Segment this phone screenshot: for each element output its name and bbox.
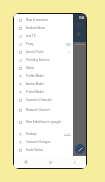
staticText: Friend Maker bbox=[26, 90, 44, 94]
staticText: Trending Stickers bbox=[26, 58, 50, 62]
button[interactable]: Robot bbox=[14, 64, 73, 72]
button[interactable]: Favorites Channels bbox=[14, 96, 73, 104]
button[interactable]: Network Channel bbox=[14, 106, 73, 114]
button[interactable]: Proxy bbox=[14, 40, 73, 48]
button[interactable]: Hotkeys bbox=[14, 130, 73, 138]
staticText: Invite Status bbox=[26, 148, 43, 152]
staticText: Avatar Maker bbox=[26, 82, 45, 86]
button[interactable]: Home bbox=[38, 156, 62, 168]
staticText: Profile Maker bbox=[26, 74, 45, 78]
button[interactable]: Friend Maker bbox=[14, 88, 73, 96]
staticText: New Screenshot bbox=[26, 18, 48, 22]
button[interactable]: Live TV bbox=[14, 32, 73, 40]
staticText: 7:45 bbox=[79, 16, 85, 20]
staticText: Live TV bbox=[26, 34, 36, 38]
button[interactable]: Android Ideas bbox=[14, 24, 73, 32]
button[interactable]: Recents bbox=[14, 156, 38, 168]
button[interactable]: Invite Status bbox=[14, 146, 73, 154]
staticText: Hotkeys bbox=[26, 132, 37, 136]
button[interactable]: Avatar Maker bbox=[14, 80, 73, 88]
button[interactable]: New Screenshot bbox=[14, 16, 73, 24]
staticText: Favorites Channels bbox=[26, 98, 52, 102]
button[interactable]: Trending Stickers bbox=[14, 56, 73, 64]
staticText: Network Channel bbox=[26, 108, 50, 112]
staticText: Rate Rabit(item in google) bbox=[26, 120, 62, 124]
button[interactable]: Contacts Changes bbox=[14, 138, 73, 146]
staticText: Proxy bbox=[26, 42, 34, 46]
button[interactable]: Special Tools bbox=[14, 48, 73, 56]
button[interactable]: Compose bbox=[75, 144, 85, 154]
staticText: Contacts Changes bbox=[26, 140, 51, 144]
staticText: Android Ideas bbox=[26, 26, 45, 30]
staticText: Special Tools bbox=[26, 50, 44, 54]
button[interactable]: Back bbox=[62, 156, 86, 168]
button[interactable]: Toggle bbox=[65, 43, 71, 46]
button[interactable]: Profile Maker bbox=[14, 72, 73, 80]
staticText: Robot bbox=[26, 66, 35, 70]
button[interactable]: Rate Rabit(item in google) bbox=[14, 118, 73, 126]
staticText: SUBMIT bbox=[64, 134, 71, 136]
button[interactable]: SUBMIT bbox=[64, 133, 71, 136]
